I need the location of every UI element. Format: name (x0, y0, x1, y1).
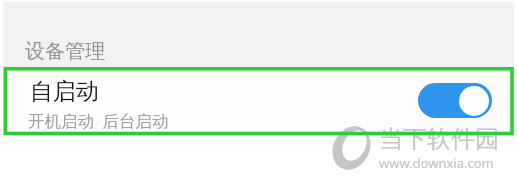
staticText: 设备管理 (25, 39, 105, 64)
staticText: www.downxia.com (379, 154, 494, 172)
staticText: 开机启动 后台启动 (28, 109, 169, 132)
staticText: 当下软件园 (379, 124, 499, 154)
staticText: 自启动 (30, 77, 99, 106)
button[interactable]: 自启动 (3, 67, 514, 136)
button[interactable]: 自启动开关 (418, 83, 492, 118)
